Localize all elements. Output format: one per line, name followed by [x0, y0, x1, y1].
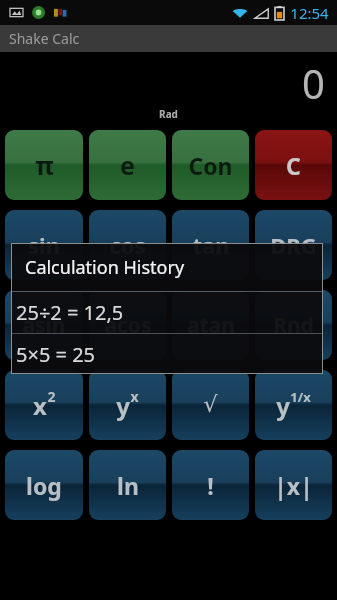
staticText: 2 [47, 387, 56, 406]
button[interactable]: DRG [255, 210, 332, 280]
staticText: asin [22, 311, 66, 340]
button[interactable]: cos [89, 210, 166, 280]
button[interactable]: asin [5, 290, 83, 360]
staticText: Shake Calc [9, 29, 80, 48]
staticText: DRG [270, 230, 317, 260]
staticText: 25÷2 = 12,5 [16, 299, 124, 326]
staticText: tan [192, 230, 230, 260]
staticText: sin [28, 230, 60, 260]
staticText: 12:54 [290, 3, 329, 23]
button[interactable]: √ [172, 370, 249, 440]
button[interactable]: x [5, 370, 83, 440]
button[interactable]: ! [172, 450, 249, 520]
staticText: 5×5 = 25 [16, 341, 96, 368]
staticText: Rnd [273, 311, 314, 340]
button[interactable]: y [89, 370, 166, 440]
staticText: ln [117, 470, 139, 501]
staticText: y [116, 389, 130, 422]
button[interactable]: atan [172, 290, 249, 360]
staticText: Rad [159, 107, 178, 121]
button[interactable]: 5×5 = 25 [11, 334, 323, 374]
staticText: acos [104, 311, 152, 340]
staticText: e [120, 148, 135, 182]
staticText: √ [203, 392, 218, 418]
button[interactable]: e [89, 130, 166, 200]
staticText: Con [188, 150, 233, 181]
staticText: ! [207, 470, 214, 501]
staticText: Calculation History [25, 255, 185, 280]
button[interactable]: C [255, 130, 332, 200]
staticText: y [276, 389, 290, 422]
button[interactable]: ln [89, 450, 166, 520]
button[interactable]: y [255, 370, 332, 440]
staticText: log [26, 470, 62, 501]
button[interactable]: sin [5, 210, 83, 280]
button[interactable]: Rnd [255, 290, 332, 360]
button[interactable]: acos [89, 290, 166, 360]
staticText: atan [187, 311, 235, 340]
staticText: π [35, 148, 54, 182]
staticText: 1/x [290, 388, 311, 406]
staticText: x [130, 387, 139, 406]
staticText: C [286, 150, 301, 181]
staticText: cos [109, 230, 146, 260]
button[interactable]: Calculation History [11, 243, 323, 374]
button[interactable]: log [5, 450, 83, 520]
button[interactable]: |x| [255, 450, 332, 520]
button[interactable]: π [5, 130, 83, 200]
staticText: x [33, 389, 47, 422]
staticText: 0 [302, 56, 325, 110]
button[interactable]: tan [172, 210, 249, 280]
button[interactable]: 25÷2 = 12,5 [11, 292, 323, 333]
button[interactable]: Con [172, 130, 249, 200]
staticText: |x| [274, 470, 313, 501]
